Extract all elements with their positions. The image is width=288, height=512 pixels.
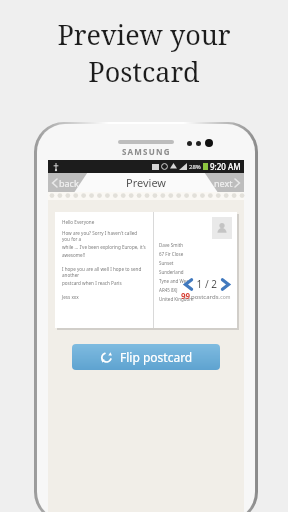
staticText: SAMSUNG [122,146,171,157]
staticText: back [59,177,79,189]
staticText: Tyne and Wear [159,278,191,284]
staticText: I hope you are all well I hope to send a… [62,266,146,278]
staticText: 9:20 AM [210,161,241,172]
staticText: postcard when I reach Paris [62,280,122,286]
staticText: Dave Smith [159,242,184,248]
staticText: United Kingdom [159,296,194,302]
staticText: awesome!! [62,252,86,258]
staticText: 99 [181,290,191,301]
staticText: How are you? Sorry I haven't called you … [62,230,146,242]
staticText: .com [219,294,231,301]
staticText: Sunset [159,260,174,266]
staticText: next [214,177,233,189]
button[interactable]: back [51,177,79,189]
button[interactable]: Previous page [183,279,194,290]
button[interactable]: Next page [220,279,231,290]
staticText: 28% [189,163,201,171]
staticText: Preview your [57,16,231,53]
staticText: Jess xxx [62,294,79,300]
staticText: Flip postcard [120,349,193,365]
button[interactable]: next [214,177,241,189]
staticText: Hello Everyone [62,219,95,225]
staticText: 1 / 2 [194,277,220,291]
staticText: Sunderland [159,269,184,275]
staticText: while ... I've been exploring Europe, it… [62,244,146,250]
staticText: AR45 8XJ [159,287,178,293]
staticText: postcards [191,293,219,301]
staticText: Postcard [88,53,200,90]
button[interactable]: Flip postcard [72,344,220,370]
staticText: 67 Fir Close [159,251,184,257]
staticText: Preview [126,175,167,190]
